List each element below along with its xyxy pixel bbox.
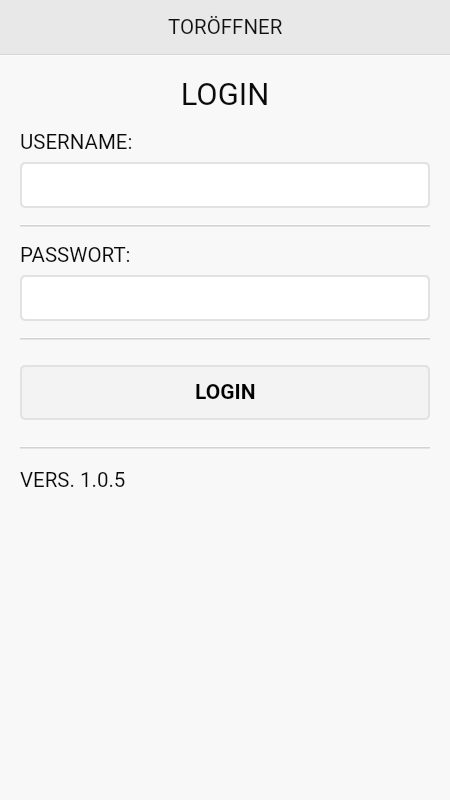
staticText: TORÖFFNER [168,15,283,39]
staticText: USERNAME: [20,130,133,154]
staticText: LOGIN [195,380,256,405]
staticText: LOGIN [0,76,450,112]
staticText: PASSWORT: [20,243,131,267]
staticText: VERS. 1.0.5 [20,468,126,492]
button[interactable]: LOGIN [22,367,428,418]
